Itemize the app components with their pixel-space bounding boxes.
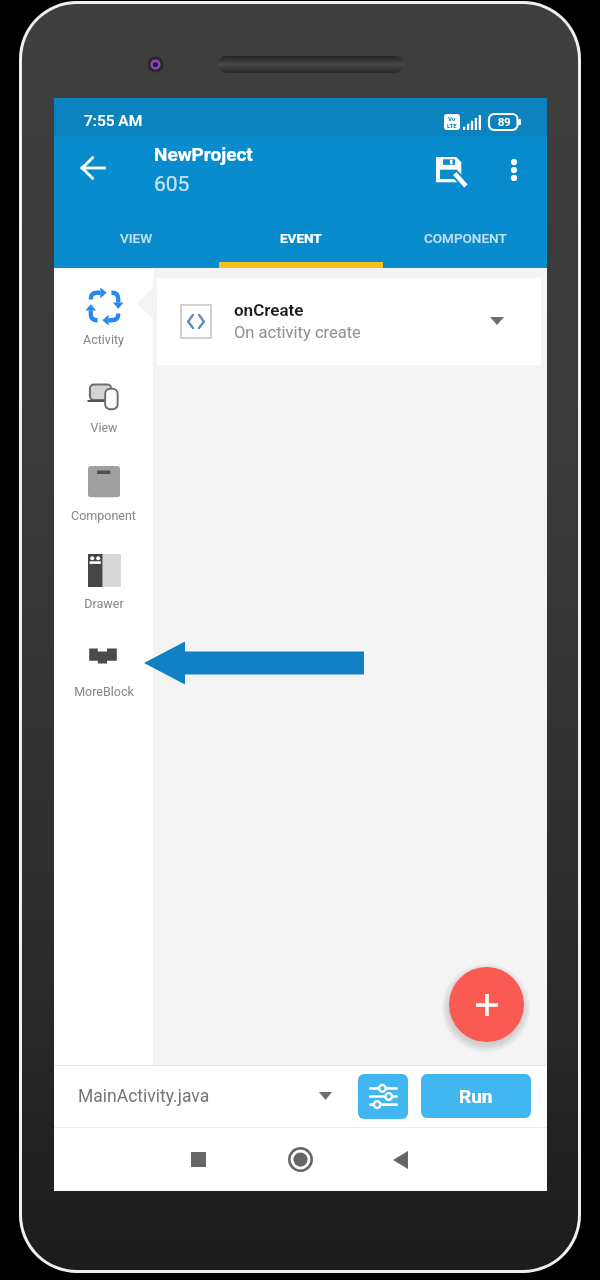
button[interactable]: Save xyxy=(429,150,475,196)
staticText: NewProject xyxy=(154,143,253,165)
button[interactable]: Back xyxy=(376,1135,425,1184)
staticText: Drawer xyxy=(84,596,124,611)
staticText: 89 xyxy=(498,116,511,129)
button[interactable]: Expand xyxy=(475,299,519,343)
staticText: 7:55 AM xyxy=(84,112,143,130)
staticText: MoreBlock xyxy=(74,684,134,699)
staticText: onCreate xyxy=(234,300,304,320)
staticText: 605 xyxy=(154,172,190,197)
button[interactable]: View xyxy=(54,365,153,453)
button[interactable]: COMPONENT xyxy=(383,210,547,268)
button[interactable]: Back xyxy=(69,144,117,192)
button[interactable]: MoreBlock xyxy=(54,629,153,717)
staticText: Run xyxy=(459,1085,493,1107)
button[interactable]: onCreate xyxy=(157,278,541,365)
staticText: Vo xyxy=(448,115,456,122)
staticText: VIEW xyxy=(120,230,153,246)
button[interactable]: Run xyxy=(421,1074,531,1118)
staticText: EVENT xyxy=(280,230,322,246)
button[interactable]: Home xyxy=(276,1135,325,1184)
button[interactable]: Add xyxy=(449,967,524,1042)
button[interactable]: EVENT xyxy=(219,210,383,268)
staticText: Component xyxy=(71,508,136,523)
button[interactable]: Drawer xyxy=(54,541,153,629)
staticText: COMPONENT xyxy=(424,230,507,246)
staticText: MainActivity.java xyxy=(78,1086,210,1107)
button[interactable]: Recents xyxy=(174,1135,223,1184)
button[interactable]: Component xyxy=(54,453,153,541)
button[interactable]: More options xyxy=(491,147,537,193)
staticText: View xyxy=(90,420,118,435)
button[interactable]: MainActivity.java xyxy=(54,1065,349,1127)
button[interactable]: VIEW xyxy=(54,210,219,268)
staticText: Activity xyxy=(83,332,124,347)
button[interactable]: Activity xyxy=(54,277,153,365)
staticText: LTE xyxy=(447,122,457,129)
button[interactable]: Settings xyxy=(358,1074,408,1119)
staticText: On activity create xyxy=(234,323,361,342)
